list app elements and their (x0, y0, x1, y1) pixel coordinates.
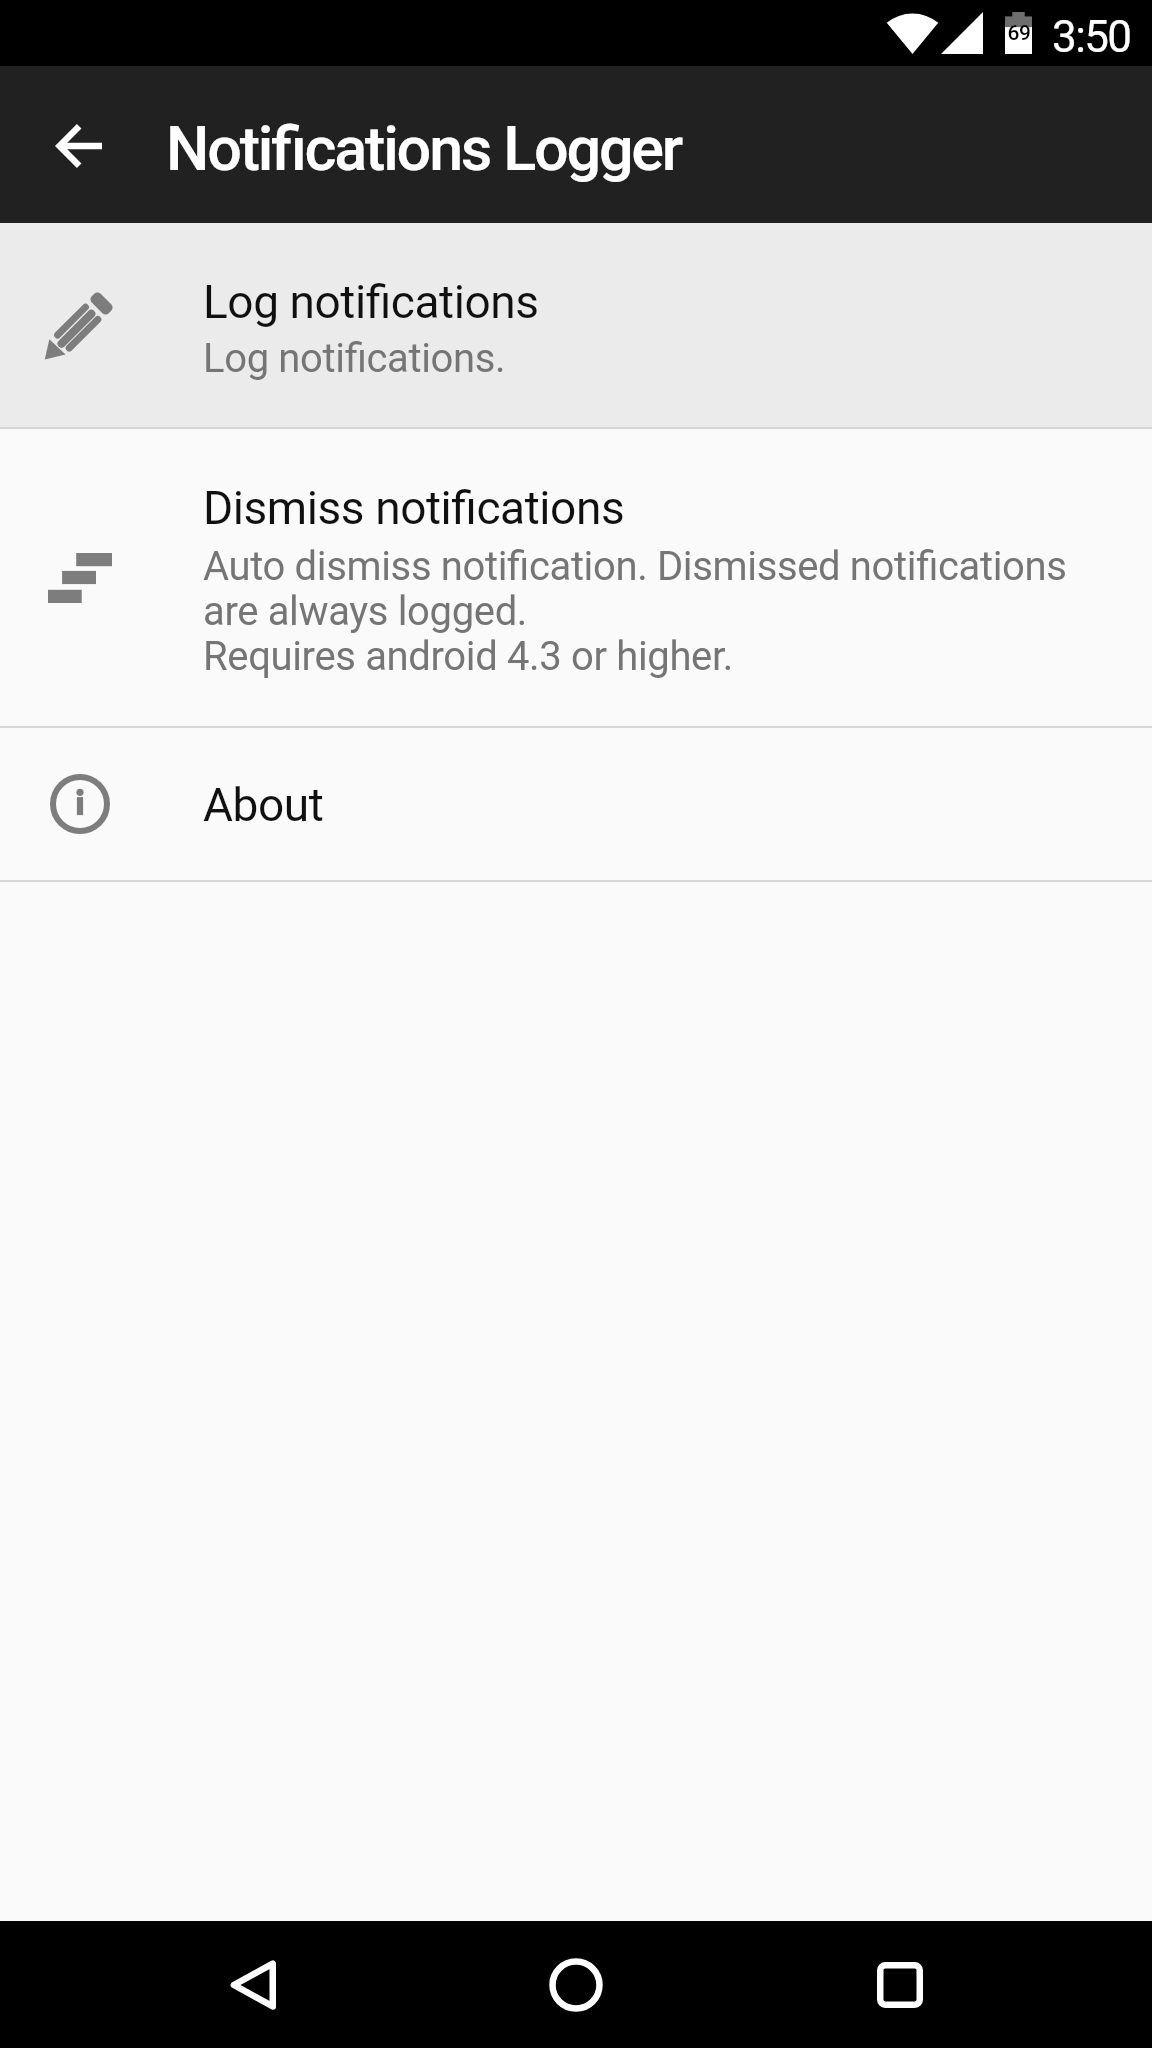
staticText: Dismiss notifications (203, 481, 625, 535)
staticText: Auto dismiss notification. Dismissed not… (203, 543, 1067, 679)
staticText: Notifications Logger (166, 113, 682, 184)
staticText: About (203, 778, 324, 832)
button[interactable]: About (0, 728, 1152, 880)
staticText: 69 (1007, 21, 1031, 46)
staticText: Log notifications (203, 275, 539, 329)
button[interactable]: Back (190, 1921, 314, 2048)
button[interactable]: Dismiss notifications (0, 429, 1152, 726)
button[interactable]: Log notifications (0, 223, 1152, 427)
staticText: 3:50 (1052, 11, 1131, 63)
staticText: Log notifications. (203, 335, 506, 382)
button[interactable]: Navigate up (27, 67, 131, 224)
button[interactable]: Home (514, 1921, 638, 2048)
button[interactable]: Recent apps (838, 1921, 962, 2048)
